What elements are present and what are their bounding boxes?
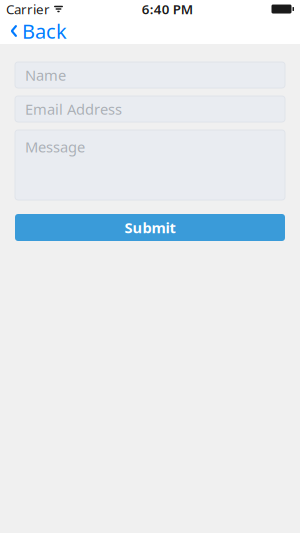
staticText: Email Address	[25, 99, 122, 119]
staticText: Submit	[124, 218, 175, 237]
staticText: Message	[25, 137, 85, 156]
staticText: Name	[25, 65, 66, 85]
button[interactable]: Name	[15, 62, 285, 88]
staticText: 6:40 PM	[142, 0, 193, 18]
button[interactable]: Back	[2, 18, 75, 44]
staticText: Back	[22, 18, 67, 44]
button[interactable]: Message	[15, 130, 285, 200]
staticText: Carrier	[6, 0, 50, 18]
button[interactable]: Email Address	[15, 96, 285, 122]
button[interactable]: Submit	[15, 214, 285, 241]
